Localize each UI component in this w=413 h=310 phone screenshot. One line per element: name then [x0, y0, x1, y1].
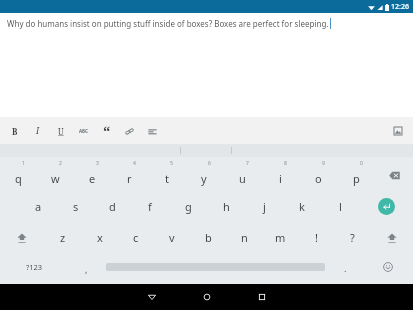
staticText: ?123: [26, 262, 43, 272]
button[interactable]: Bullet list: [141, 118, 164, 144]
staticText: p: [353, 171, 360, 186]
button[interactable]: 4: [111, 160, 148, 191]
button[interactable]: Enter: [359, 191, 413, 222]
staticText: n: [241, 230, 248, 245]
staticText: 8: [284, 160, 287, 167]
button[interactable]: d: [94, 191, 131, 222]
button[interactable]: 9: [299, 160, 337, 191]
staticText: c: [133, 230, 139, 245]
staticText: g: [185, 199, 192, 214]
button[interactable]: ,: [68, 253, 104, 281]
staticText: 4: [133, 160, 136, 167]
button[interactable]: Back: [124, 287, 179, 307]
button[interactable]: 0: [337, 160, 375, 191]
button[interactable]: f: [131, 191, 169, 222]
button[interactable]: v: [154, 222, 190, 253]
button[interactable]: l: [321, 191, 359, 222]
staticText: I: [36, 125, 40, 137]
staticText: l: [339, 199, 342, 214]
staticText: v: [169, 230, 175, 245]
button[interactable]: 6: [185, 160, 223, 191]
staticText: B: [12, 126, 18, 137]
staticText: y: [201, 171, 207, 186]
staticText: i: [279, 171, 282, 186]
staticText: o: [315, 171, 322, 186]
button[interactable]: 2: [37, 160, 74, 191]
staticText: ,: [85, 263, 88, 275]
staticText: 9: [322, 160, 325, 167]
button[interactable]: Space: [104, 253, 327, 281]
button[interactable]: Shift: [370, 222, 413, 253]
staticText: k: [299, 199, 305, 214]
staticText: w: [51, 171, 60, 186]
button[interactable]: ?123: [0, 253, 68, 281]
button[interactable]: 5: [148, 160, 185, 191]
staticText: b: [205, 230, 212, 245]
staticText: f: [148, 199, 152, 214]
staticText: U: [58, 126, 64, 137]
staticText: “: [103, 121, 111, 141]
staticText: ?: [350, 230, 355, 245]
button[interactable]: 7: [223, 160, 261, 191]
button[interactable]: Home: [179, 287, 234, 307]
button[interactable]: a: [20, 191, 57, 222]
button[interactable]: s: [57, 191, 94, 222]
button[interactable]: 1: [0, 160, 37, 191]
button[interactable]: Underline: [49, 118, 72, 144]
staticText: 6: [208, 160, 211, 167]
staticText: 3: [96, 160, 99, 167]
staticText: r: [127, 171, 132, 186]
button[interactable]: Quote: [95, 118, 118, 144]
staticText: 1: [22, 160, 25, 167]
button[interactable]: b: [190, 222, 226, 253]
staticText: x: [97, 230, 103, 245]
button[interactable]: Italic: [26, 118, 49, 144]
staticText: Why do humans insist on putting stuff in…: [7, 18, 329, 29]
button[interactable]: x: [81, 222, 118, 253]
button[interactable]: Insert image: [389, 122, 406, 139]
button[interactable]: c: [118, 222, 154, 253]
button[interactable]: .: [327, 253, 363, 281]
button[interactable]: Link: [118, 118, 141, 144]
staticText: s: [73, 199, 79, 214]
button[interactable]: 8: [261, 160, 299, 191]
button[interactable]: ?: [334, 222, 370, 253]
button[interactable]: z: [44, 222, 81, 253]
button[interactable]: k: [283, 191, 321, 222]
staticText: d: [109, 199, 116, 214]
staticText: 12:26: [391, 2, 409, 12]
staticText: q: [15, 171, 22, 186]
staticText: 7: [246, 160, 249, 167]
staticText: 0: [360, 160, 363, 167]
staticText: j: [263, 199, 266, 214]
staticText: z: [60, 230, 66, 245]
button[interactable]: g: [169, 191, 207, 222]
button[interactable]: !: [298, 222, 334, 253]
staticText: !: [315, 230, 318, 245]
button[interactable]: m: [262, 222, 298, 253]
staticText: t: [165, 171, 169, 186]
button[interactable]: Strikethrough: [72, 118, 95, 144]
button[interactable]: Shift: [0, 222, 44, 253]
staticText: ABC: [79, 128, 88, 134]
staticText: m: [275, 230, 286, 245]
button[interactable]: Backspace: [375, 160, 413, 191]
button[interactable]: Recent apps: [234, 287, 289, 307]
button[interactable]: j: [245, 191, 283, 222]
button[interactable]: Emoji: [363, 253, 413, 281]
staticText: .: [344, 262, 347, 274]
button[interactable]: 3: [74, 160, 111, 191]
button[interactable]: Bold: [3, 118, 26, 144]
staticText: 2: [59, 160, 62, 167]
staticText: h: [223, 199, 230, 214]
staticText: u: [239, 171, 246, 186]
staticText: a: [35, 199, 42, 214]
staticText: e: [89, 171, 96, 186]
button[interactable]: h: [207, 191, 245, 222]
button[interactable]: n: [226, 222, 262, 253]
staticText: 5: [170, 160, 173, 167]
